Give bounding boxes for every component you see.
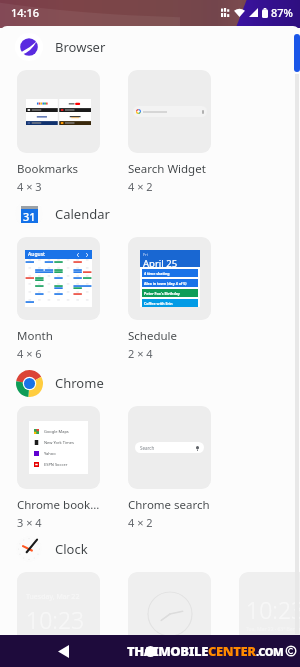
staticText: ESPN Soccer <box>44 462 68 467</box>
staticText: Schedule <box>128 328 178 344</box>
staticText: 31 <box>23 209 36 223</box>
staticText: Peter Fox's Birthday <box>144 291 180 296</box>
button[interactable]: Home <box>135 635 165 667</box>
staticText: Google Maps <box>44 429 69 434</box>
button[interactable]: August <box>17 237 100 361</box>
staticText: April 25 <box>143 257 178 267</box>
staticText: Search <box>140 445 155 451</box>
button[interactable]: 31 <box>0 199 300 229</box>
staticText: Chrome <box>55 374 104 392</box>
staticText: 87% <box>271 5 293 20</box>
staticText: Browser <box>55 38 106 56</box>
staticText: .COM <box>256 644 284 659</box>
staticText: August <box>28 251 45 258</box>
staticText: 2 × 4 <box>128 346 153 361</box>
staticText: 4 × 2 <box>128 179 153 194</box>
button[interactable]: Chrome <box>0 368 300 398</box>
button[interactable]: Fri <box>128 237 211 361</box>
staticText: New York Times <box>44 440 74 445</box>
button[interactable]: Search Widget <box>128 70 211 194</box>
staticText: 4 time skating <box>144 271 170 276</box>
button[interactable]: Bookmarks <box>17 70 100 194</box>
staticText: CENTER <box>208 642 256 660</box>
button[interactable]: Clock <box>0 534 300 564</box>
staticText: Month <box>17 328 53 344</box>
staticText: 4 × 3 <box>17 179 42 194</box>
staticText: Fri <box>143 252 148 257</box>
staticText: 4 × 6 <box>17 346 42 361</box>
staticText: Chrome search <box>128 497 210 513</box>
staticText: 14:16 <box>11 5 40 20</box>
staticText: 10:23 <box>246 594 300 625</box>
button[interactable]: Search <box>128 406 211 530</box>
staticText: Search Widget <box>128 161 206 177</box>
button[interactable]: Google Maps <box>17 406 100 530</box>
staticText: Clock <box>55 540 88 558</box>
staticText: Chrome book… <box>17 497 100 513</box>
button[interactable]: Back <box>48 635 78 667</box>
staticText: Yahoo <box>44 451 56 456</box>
button[interactable]: Browser <box>0 32 300 62</box>
staticText: 3 × 4 <box>17 515 42 530</box>
staticText: 4 × 2 <box>128 515 153 530</box>
staticText: Alex in town (day 4 of 5) <box>144 281 187 286</box>
staticText: Coffee with Erin <box>144 301 173 306</box>
staticText: THAIMOBILE <box>127 642 208 660</box>
staticText: Bookmarks <box>17 161 79 177</box>
staticText: Calendar <box>55 205 110 223</box>
